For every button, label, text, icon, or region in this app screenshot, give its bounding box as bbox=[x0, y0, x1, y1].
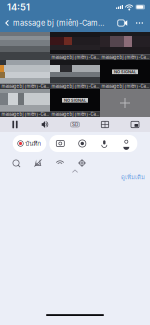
button[interactable]: Zoom bbox=[5, 154, 27, 171]
button[interactable]: Picture in picture bbox=[120, 117, 150, 132]
staticText: massage bj (miên)-Camera4 bbox=[1, 84, 50, 89]
staticText: massage bj (miên)-Camera7 bbox=[1, 112, 50, 117]
staticText: SD bbox=[72, 122, 78, 127]
button[interactable]: Camera 8 bbox=[50, 89, 100, 117]
button[interactable]: More options bbox=[131, 14, 148, 32]
staticText: massage bj (miên)-Camera1 bbox=[13, 18, 106, 27]
button[interactable]: Camera 7 bbox=[0, 89, 50, 117]
button[interactable]: Camera 4 bbox=[0, 60, 50, 89]
button[interactable]: Camera bbox=[49, 135, 71, 152]
staticText: บันทึก bbox=[25, 139, 41, 148]
button[interactable]: Layout bbox=[90, 117, 120, 132]
button[interactable]: Sound bbox=[30, 117, 60, 132]
staticText: massage bj (miên)-Camera5 bbox=[51, 84, 100, 89]
button[interactable]: Person bbox=[115, 135, 137, 152]
button[interactable]: Wifi bbox=[49, 154, 71, 171]
button[interactable]: Record video bbox=[114, 14, 131, 32]
staticText: 14:51 bbox=[7, 1, 30, 13]
button[interactable]: Camera 6 bbox=[100, 60, 150, 89]
button[interactable]: Camera 1 bbox=[0, 32, 50, 60]
button[interactable]: Camera 5 bbox=[50, 60, 100, 89]
button[interactable]: Pause bbox=[0, 117, 30, 132]
button[interactable]: Quality bbox=[60, 117, 90, 132]
staticText: massage bj (miên)-Camera3 bbox=[101, 55, 150, 60]
staticText: ดูเพิ่มเติม bbox=[121, 172, 145, 182]
button[interactable]: Back bbox=[0, 14, 106, 32]
staticText: NO SIGNAL bbox=[64, 98, 86, 103]
button[interactable]: Alerts bbox=[27, 154, 49, 171]
button[interactable]: Camera 3 bbox=[100, 32, 150, 60]
staticText: massage bj (miên)-Camera8 bbox=[51, 112, 100, 117]
staticText: NO SIGNAL bbox=[114, 69, 136, 74]
button[interactable]: Add camera bbox=[100, 89, 150, 117]
button[interactable]: Microphone bbox=[93, 135, 115, 152]
button[interactable]: Camera 2 bbox=[50, 32, 100, 60]
button[interactable]: Record bbox=[71, 135, 93, 152]
button[interactable]: Pan tilt zoom bbox=[71, 154, 93, 171]
staticText: massage bj (miên)-Camera2 bbox=[51, 55, 100, 60]
button[interactable]: บันทึก bbox=[13, 135, 46, 152]
staticText: massage bj (miên)-Camera6 bbox=[101, 84, 150, 89]
